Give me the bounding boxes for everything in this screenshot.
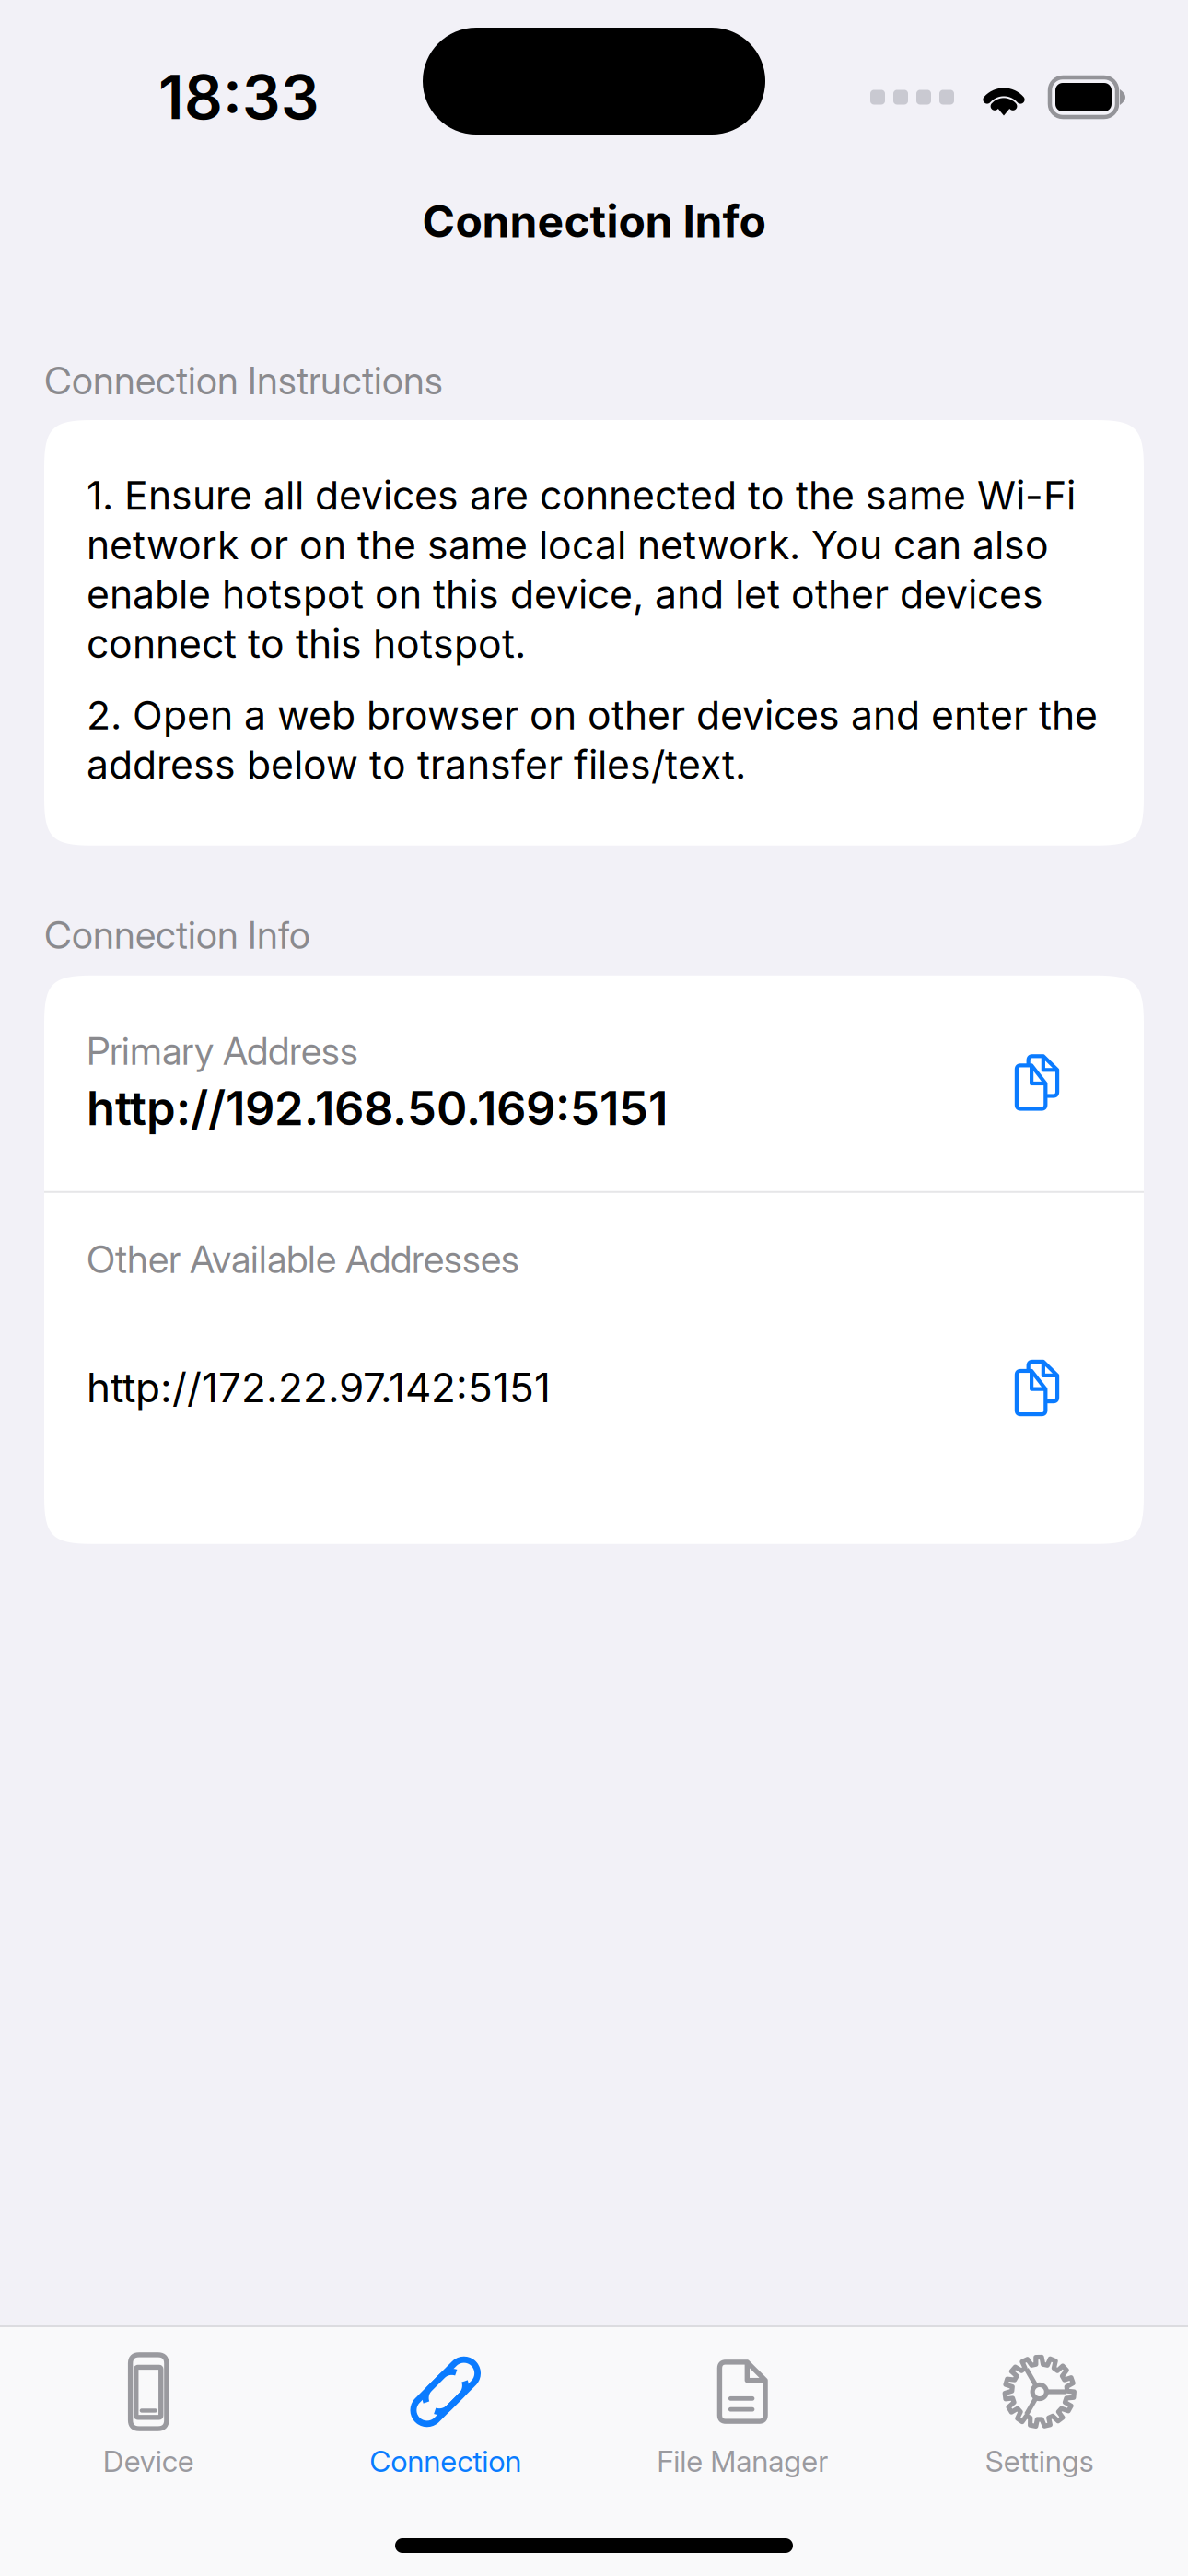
staticText: Device [103,2443,194,2479]
button[interactable]: Settings [891,2327,1188,2489]
staticText: 1. Ensure all devices are connected to t… [87,472,1076,667]
staticText: Connection Info [44,912,310,958]
staticText: 18:33 [158,61,320,134]
staticText: Primary Address [87,1028,358,1074]
staticText: Settings [985,2443,1094,2479]
staticText: Connection [369,2443,521,2479]
button[interactable]: Connection [297,2327,594,2489]
staticText: http://172.22.97.142:5151 [87,1363,551,1412]
staticText: http://192.168.50.169:5151 [87,1080,668,1136]
staticText: File Manager [657,2443,828,2479]
staticText: Connection Info [422,194,766,248]
button[interactable]: Device [0,2327,297,2489]
staticText: Other Available Addresses [87,1236,519,1282]
staticText: Connection Instructions [44,357,443,404]
button[interactable]: Copy primary address [44,975,1144,1191]
staticText: 2. Open a web browser on other devices a… [87,691,1098,788]
button[interactable]: Copy other available address [87,1279,1144,1419]
button[interactable]: File Manager [594,2327,891,2489]
